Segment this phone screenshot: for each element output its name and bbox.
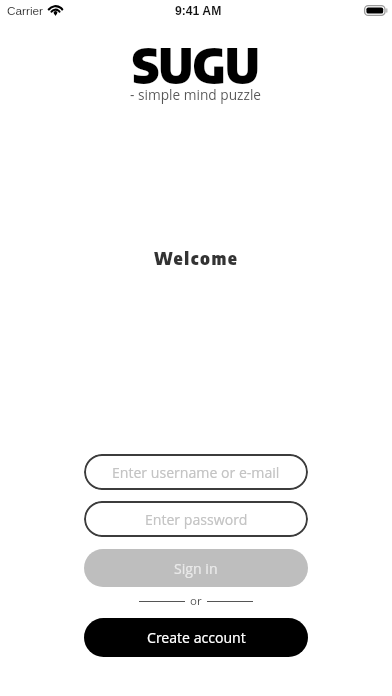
staticText: 9:41 AM bbox=[175, 4, 222, 18]
staticText: SUGU bbox=[132, 35, 260, 95]
staticText: Enter username or e-mail bbox=[112, 463, 280, 482]
other: Wi-Fi signal bbox=[46, 2, 65, 14]
staticText: Carrier bbox=[7, 4, 44, 17]
staticText: Welcome bbox=[154, 247, 239, 268]
button[interactable]: Sign in bbox=[84, 549, 308, 587]
button[interactable]: Enter password bbox=[84, 501, 308, 537]
button[interactable]: Create account bbox=[84, 618, 308, 657]
staticText: Sign in bbox=[174, 559, 218, 578]
staticText: - simple mind puzzle bbox=[130, 85, 262, 104]
other: Battery full bbox=[364, 5, 388, 16]
staticText: or bbox=[190, 593, 202, 608]
button[interactable]: Enter username or e-mail bbox=[84, 454, 308, 490]
staticText: Enter password bbox=[145, 510, 248, 529]
staticText: Create account bbox=[147, 628, 246, 647]
